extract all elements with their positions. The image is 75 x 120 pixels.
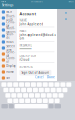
staticText: Done <box>47 75 55 79</box>
button[interactable]: Keyboard key <box>19 99 24 103</box>
staticText: Notifications <box>6 26 15 34</box>
button[interactable]: Keyboard key <box>55 99 60 103</box>
staticText: John Appleseed <box>19 22 43 26</box>
staticText: Cellular <box>6 20 15 28</box>
staticText: Control <box>6 56 15 64</box>
staticText: Account <box>19 11 36 16</box>
button[interactable]: Keyboard key <box>23 93 28 98</box>
button[interactable]: Keyboard key <box>9 104 14 108</box>
staticText: Focus <box>6 40 13 44</box>
button[interactable]: Keyboard key <box>43 99 48 103</box>
button[interactable]: Keyboard key <box>11 93 16 98</box>
button[interactable]: Keyboard key <box>25 99 30 103</box>
staticText: Display <box>6 64 15 68</box>
button[interactable]: Keyboard key <box>54 82 59 87</box>
button[interactable]: Keyboard key <box>37 82 42 87</box>
button[interactable]: Keyboard key <box>49 99 54 103</box>
staticText: Sign Out of Account <box>21 71 49 74</box>
button[interactable]: Home <box>0 69 17 75</box>
staticText: Home <box>6 70 14 74</box>
button[interactable]: Keyboard key <box>13 82 18 87</box>
button[interactable]: Keyboard key <box>41 93 46 98</box>
staticText: PASSWORD <box>19 44 32 47</box>
button[interactable]: Keyboard key <box>62 88 67 92</box>
button[interactable]: Notifications <box>0 27 17 33</box>
button[interactable]: Keyboard key <box>37 99 42 103</box>
button[interactable]: Done <box>47 75 55 79</box>
button[interactable]: Keyboard key <box>9 88 14 92</box>
button[interactable]: Keyboard key <box>45 88 50 92</box>
button[interactable]: Keyboard key <box>7 82 12 87</box>
button[interactable]: Keyboard key <box>25 82 30 87</box>
staticText: Settings <box>2 3 13 7</box>
button[interactable]: Keyboard key <box>66 82 71 87</box>
button[interactable]: Keyboard key <box>51 88 56 92</box>
staticText: Bluetooth <box>6 14 15 22</box>
button[interactable]: Cancel <box>35 75 44 79</box>
staticText: WiFi 92% <box>68 1 73 3</box>
button[interactable]: Keyboard key <box>39 88 44 92</box>
button[interactable]: Bluetooth <box>0 15 17 21</box>
staticText: General <box>6 50 15 58</box>
staticText: john.appleseed@icloud.com <box>19 33 56 40</box>
button[interactable]: Keyboard key <box>43 82 48 87</box>
button[interactable]: Cellular <box>0 21 17 27</box>
button[interactable]: Keyboard key <box>17 93 22 98</box>
button[interactable]: Keyboard key <box>49 104 54 108</box>
staticText: DESCRIPTION <box>19 54 36 58</box>
staticText: Wi-Fi <box>6 10 12 14</box>
button[interactable]: Keyboard key <box>15 88 20 92</box>
staticText: •••••••••••• <box>19 47 31 51</box>
button[interactable]: Keyboard key <box>54 104 61 108</box>
button[interactable]: Control <box>0 57 17 63</box>
button[interactable]: Keyboard key <box>29 93 34 98</box>
button[interactable]: Keyboard key <box>31 82 36 87</box>
button[interactable]: Keyboard key <box>7 99 12 103</box>
button[interactable]: Keyboard key <box>58 93 63 98</box>
button[interactable]: Keyboard key <box>49 82 54 87</box>
button[interactable]: Keyboard key <box>1 82 6 87</box>
staticText: Cancel <box>35 75 44 79</box>
button[interactable]: Keyboard key <box>60 82 65 87</box>
button[interactable]: Keyboard key <box>5 93 10 98</box>
button[interactable]: Wi-Fi <box>0 9 17 15</box>
staticText: iCloud <box>19 58 29 61</box>
button[interactable]: Keyboard key <box>53 93 58 98</box>
button[interactable]: Keyboard key <box>13 99 18 103</box>
button[interactable]: Display <box>0 63 17 69</box>
button[interactable]: Keyboard key <box>47 93 52 98</box>
staticText: Siri <box>6 76 10 80</box>
button[interactable]: Keyboard key <box>35 93 40 98</box>
button[interactable]: Keyboard key <box>1 104 8 108</box>
button[interactable]: Keyboard key <box>19 82 24 87</box>
staticText: EMAIL <box>19 29 26 33</box>
staticText: Sounds <box>6 32 14 40</box>
button[interactable]: Siri <box>0 75 17 81</box>
staticText: 9:41 AM Wed Mar 5 <box>31 1 43 3</box>
button[interactable]: Sign Out of Account <box>19 70 51 75</box>
button[interactable]: Keyboard key <box>56 88 61 92</box>
staticText: NAME <box>19 19 26 22</box>
button[interactable]: Sounds <box>0 33 17 39</box>
button[interactable]: Focus <box>0 39 17 45</box>
staticText: Screen Time <box>6 44 15 52</box>
staticText: ADVANCED <box>19 65 33 68</box>
button[interactable]: Screen Time <box>0 45 17 51</box>
button[interactable]: General <box>0 51 17 57</box>
button[interactable]: Keyboard key <box>3 88 8 92</box>
